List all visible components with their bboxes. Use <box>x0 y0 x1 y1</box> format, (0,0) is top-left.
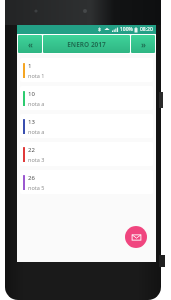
staticText: 22 <box>28 146 35 154</box>
staticText: nota a <box>28 100 45 107</box>
staticText: 26 <box>28 174 35 182</box>
staticText: 08:20 <box>140 26 153 33</box>
staticText: ENERO 2017 <box>67 40 106 49</box>
button[interactable]: 13 <box>20 114 153 138</box>
staticText: nota 5 <box>28 184 45 191</box>
staticText: 13 <box>28 118 35 126</box>
button[interactable]: ENERO 2017 <box>43 35 130 53</box>
staticText: « <box>28 39 33 50</box>
staticText: 100% <box>120 26 133 33</box>
button[interactable]: 26 <box>20 170 153 194</box>
staticText: nota 3 <box>28 156 45 163</box>
button[interactable]: Next month <box>131 35 155 53</box>
button[interactable]: 1 <box>20 58 153 82</box>
staticText: » <box>141 39 146 50</box>
button[interactable]: 10 <box>20 86 153 110</box>
staticText: nota a <box>28 128 45 135</box>
staticText: 1 <box>28 62 32 70</box>
staticText: 10 <box>28 90 35 98</box>
button[interactable]: New note <box>125 226 147 248</box>
staticText: nota 1 <box>28 72 45 79</box>
button[interactable]: 22 <box>20 142 153 166</box>
button[interactable]: Previous month <box>18 35 42 53</box>
